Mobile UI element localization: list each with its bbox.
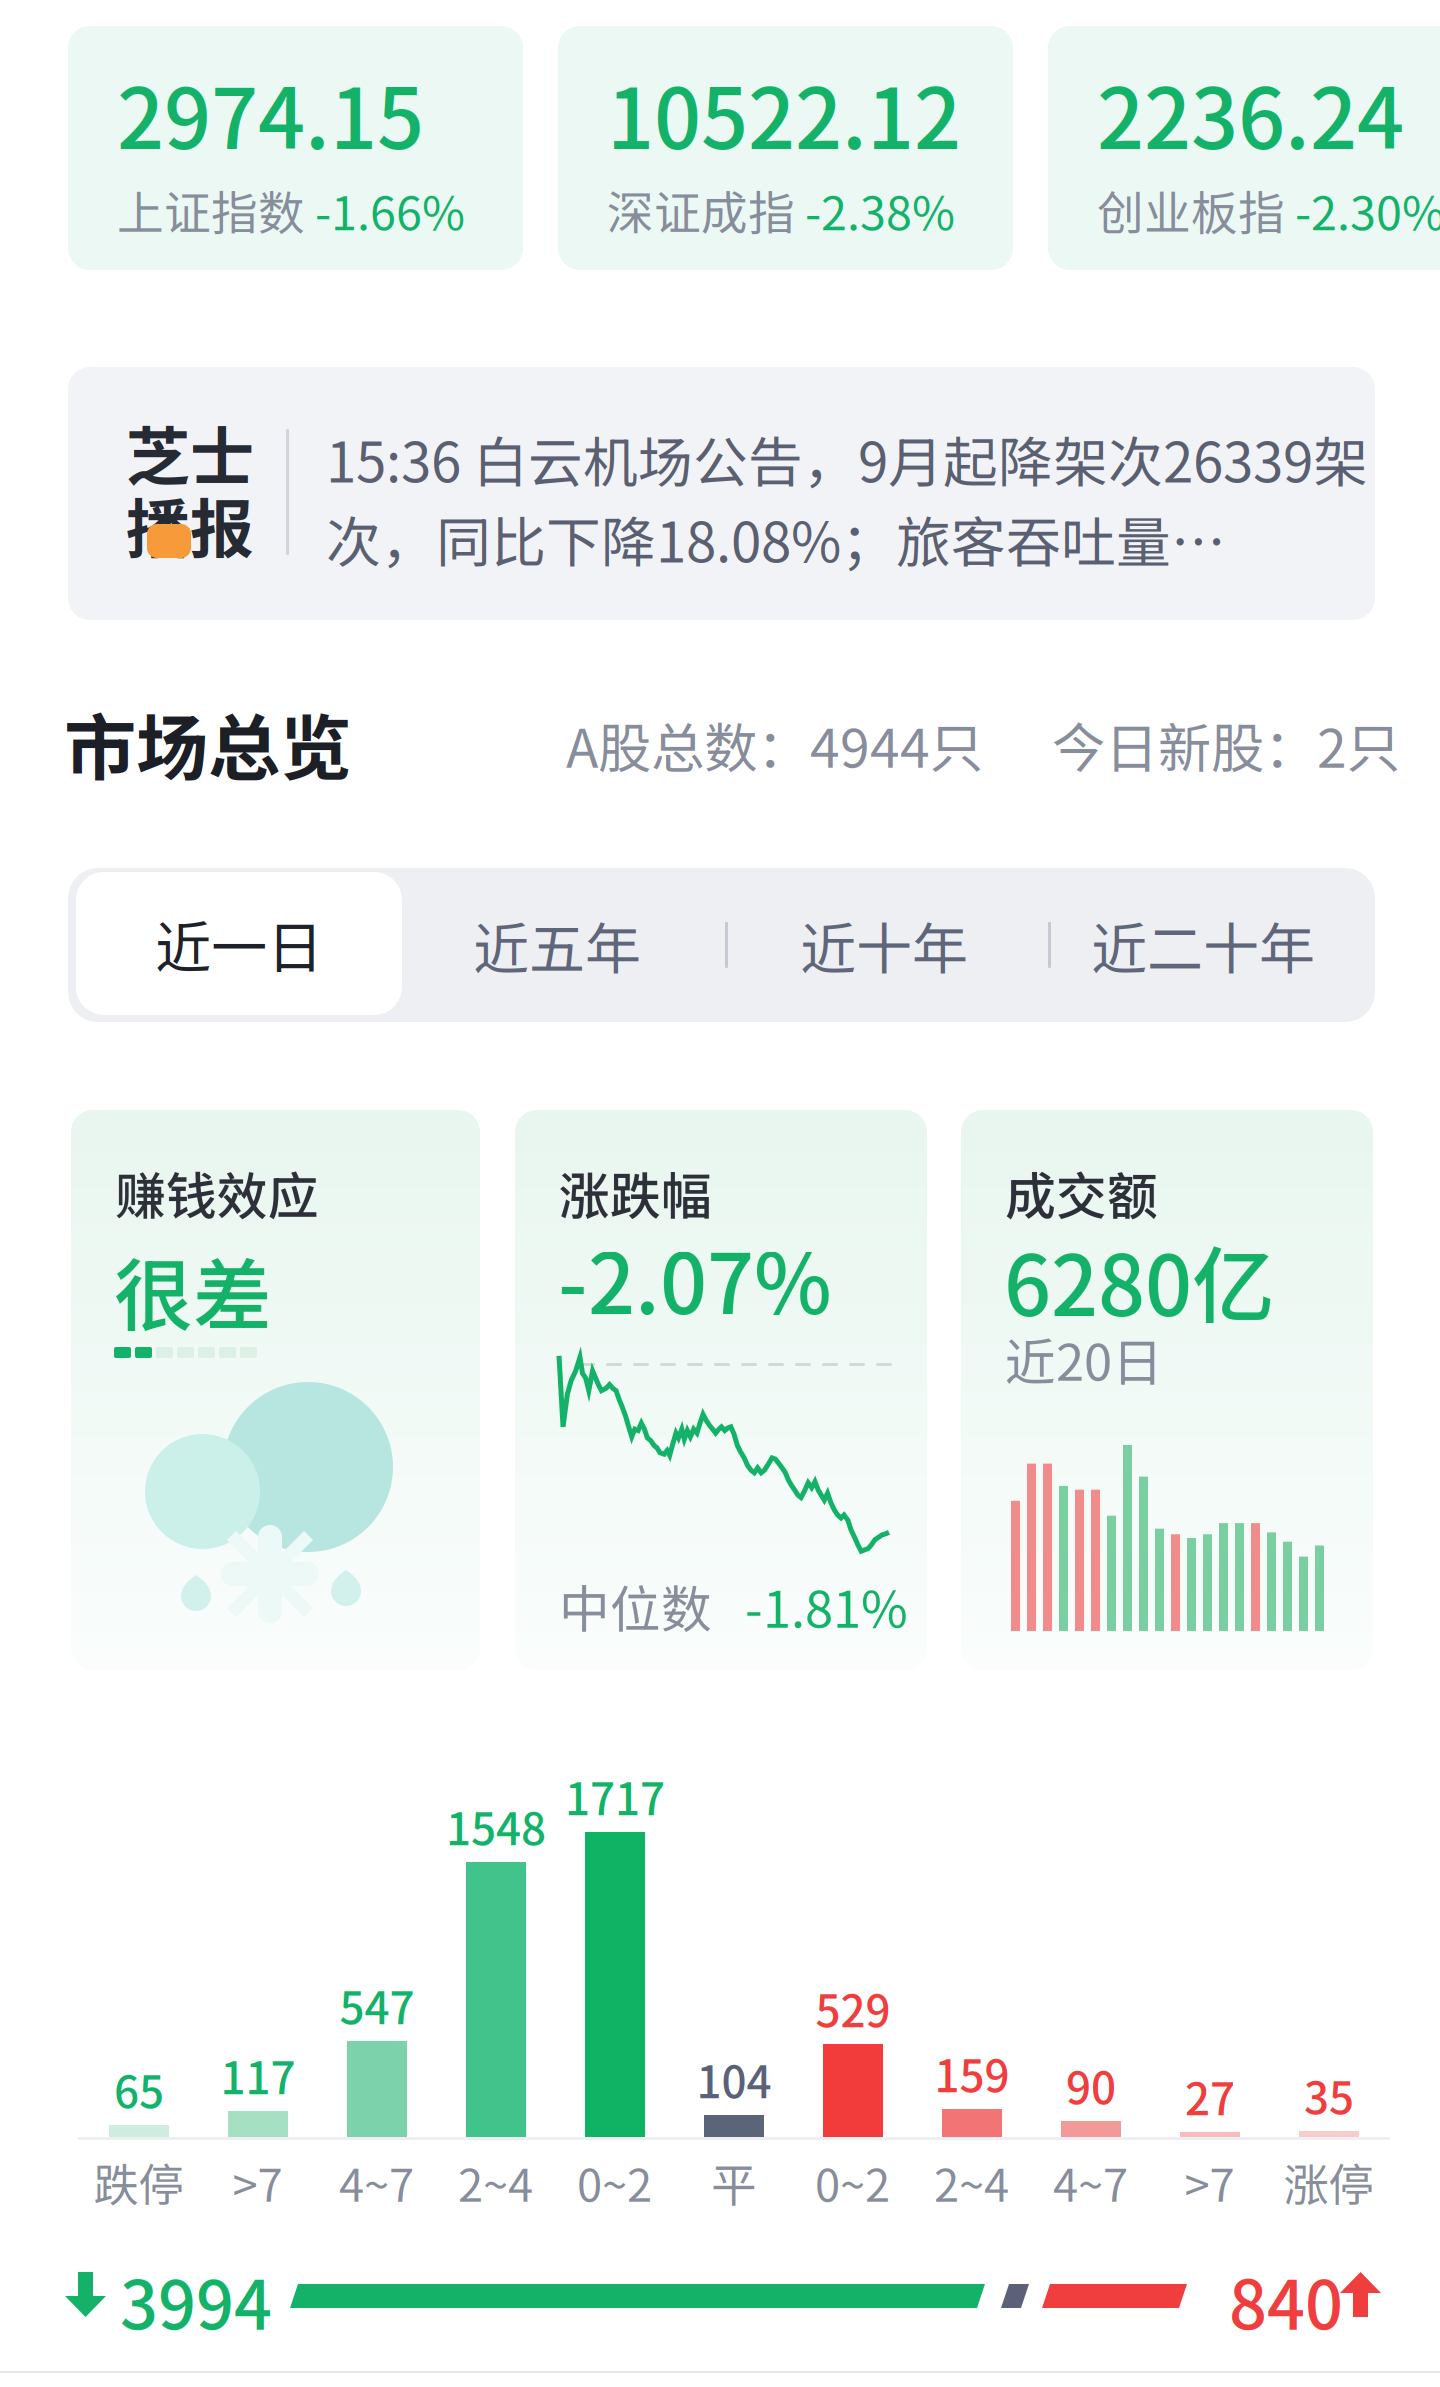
staticText: >7 xyxy=(232,2149,282,2215)
button[interactable]: 赚钱效应 xyxy=(71,1110,480,1670)
staticText: 159 xyxy=(934,2041,1009,2105)
button[interactable]: 65 xyxy=(79,1739,198,2139)
staticText: 104 xyxy=(696,2047,771,2111)
button[interactable]: 104 xyxy=(674,1739,793,2139)
button[interactable]: 涨跌幅 xyxy=(515,1110,927,1670)
button[interactable]: 90 xyxy=(1031,1739,1150,2139)
staticText: 深证成指 xyxy=(607,176,795,244)
staticText: 创业板指 xyxy=(1097,176,1285,244)
staticText: 市场总览 xyxy=(64,691,352,795)
staticText: 529 xyxy=(815,1976,890,2040)
staticText: 跌停 xyxy=(93,2149,183,2215)
staticText: 65 xyxy=(114,2057,164,2121)
button[interactable]: 2236.24 xyxy=(1048,26,1440,270)
staticText: 上证指数 xyxy=(117,176,305,244)
staticText: 3994 xyxy=(120,2252,272,2348)
staticText: 15:36 白云机场公告，9月起降架次26339架 xyxy=(326,419,1368,498)
staticText: 芝士 xyxy=(126,406,254,499)
staticText: 近十年 xyxy=(800,904,968,986)
staticText: 2974.15 xyxy=(117,53,424,173)
staticText: 成交额 xyxy=(1005,1156,1158,1229)
staticText: 中位数 xyxy=(559,1569,712,1642)
staticText: 今日新股：2只 xyxy=(1052,706,1400,783)
button[interactable]: 近五年 xyxy=(432,874,682,1016)
button[interactable]: 10522.12 xyxy=(558,26,1013,270)
staticText: 涨跌幅 xyxy=(559,1156,712,1229)
staticText: 播报 xyxy=(126,478,254,571)
staticText: 4~7 xyxy=(339,2149,414,2215)
staticText: 90 xyxy=(1066,2053,1116,2117)
staticText: A股总数：4944只 xyxy=(566,706,983,783)
staticText: 很差 xyxy=(114,1233,272,1347)
button[interactable]: 芝士 xyxy=(68,367,1375,620)
staticText: 平 xyxy=(711,2149,756,2215)
staticText: 涨停 xyxy=(1283,2149,1373,2215)
button[interactable]: 117 xyxy=(198,1739,317,2139)
staticText: 近五年 xyxy=(473,904,641,986)
button[interactable]: 35 xyxy=(1269,1739,1388,2139)
staticText: >7 xyxy=(1184,2149,1234,2215)
staticText: 27 xyxy=(1185,2064,1235,2128)
button[interactable]: 1717 xyxy=(555,1739,674,2139)
button[interactable]: 近一日 xyxy=(76,872,402,1015)
staticText: 次，同比下降18.08%；旅客吞吐量… xyxy=(326,499,1226,578)
button[interactable]: 成交额 xyxy=(961,1110,1373,1670)
button[interactable]: 3994 xyxy=(0,2240,1440,2350)
staticText: 0~2 xyxy=(815,2149,890,2215)
staticText: 4~7 xyxy=(1053,2149,1128,2215)
button[interactable]: 1548 xyxy=(436,1739,555,2139)
staticText: -1.81% xyxy=(712,1569,908,1642)
staticText: 6280亿 xyxy=(1004,1220,1275,1340)
staticText: 1548 xyxy=(446,1794,546,1858)
staticText: -1.66% xyxy=(305,176,465,244)
staticText: 117 xyxy=(220,2043,295,2107)
button[interactable]: 近二十年 xyxy=(1063,874,1343,1016)
staticText: 35 xyxy=(1304,2063,1354,2127)
button[interactable]: 近十年 xyxy=(759,874,1009,1016)
staticText: 赚钱效应 xyxy=(115,1156,319,1229)
staticText: 0~2 xyxy=(577,2149,652,2215)
button[interactable]: 529 xyxy=(793,1739,912,2139)
staticText: 1717 xyxy=(565,1764,665,1828)
button[interactable]: 2974.15 xyxy=(68,26,523,270)
staticText: 840 xyxy=(1229,2252,1343,2348)
staticText: 2~4 xyxy=(458,2149,533,2215)
button[interactable]: 547 xyxy=(317,1739,436,2139)
staticText: 近20日 xyxy=(1005,1322,1163,1395)
staticText: -2.30% xyxy=(1285,176,1440,244)
staticText: 10522.12 xyxy=(607,53,961,173)
staticText: 近二十年 xyxy=(1091,904,1315,986)
staticText: 近一日 xyxy=(155,903,323,984)
staticText: -2.07% xyxy=(558,1218,832,1338)
staticText: 547 xyxy=(339,1973,414,2037)
staticText: -2.38% xyxy=(795,176,955,244)
button[interactable]: 27 xyxy=(1150,1739,1269,2139)
button[interactable]: 159 xyxy=(912,1739,1031,2139)
staticText: 2~4 xyxy=(934,2149,1009,2215)
staticText: 2236.24 xyxy=(1097,53,1404,173)
